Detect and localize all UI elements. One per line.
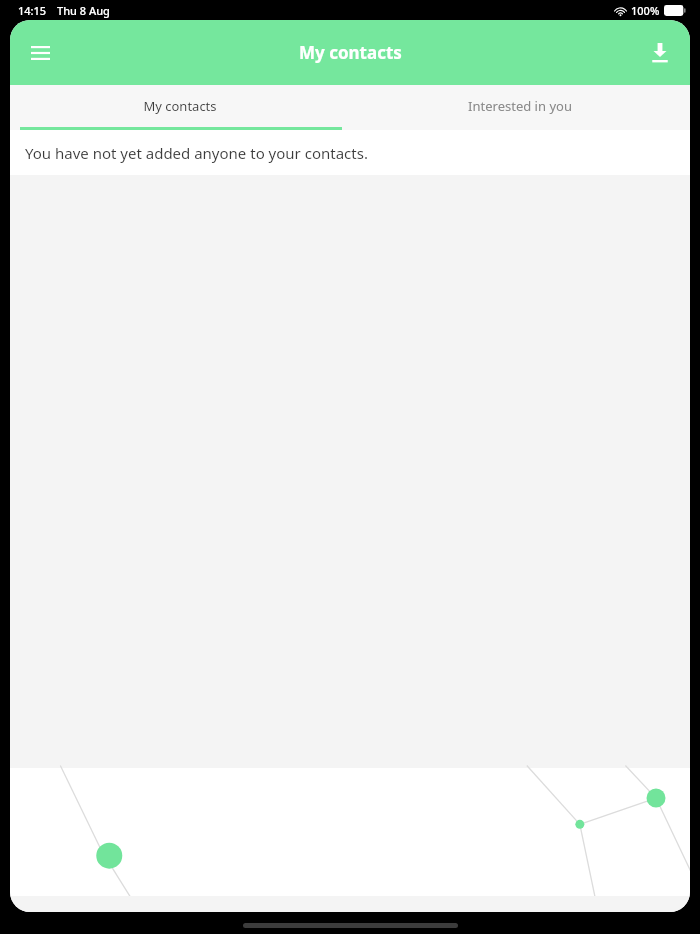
staticText: Interested in you [468, 97, 572, 115]
staticText: You have not yet added anyone to your co… [25, 143, 368, 163]
staticText: 100% [631, 3, 660, 18]
button[interactable]: Menu [18, 31, 62, 75]
button[interactable]: Interested in you [350, 85, 690, 130]
staticText: Thu 8 Aug [57, 3, 110, 18]
staticText: My contacts [143, 97, 217, 115]
staticText: 14:15 [18, 3, 47, 18]
staticText: My contacts [299, 41, 402, 64]
button[interactable]: My contacts [10, 85, 350, 130]
button[interactable]: Download [638, 31, 682, 75]
